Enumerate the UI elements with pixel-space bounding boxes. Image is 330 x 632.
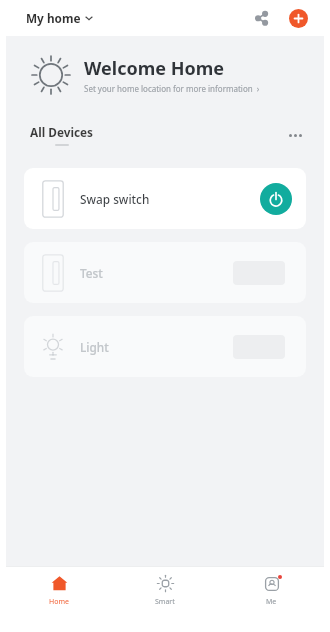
staticText: Home xyxy=(49,597,69,607)
button[interactable]: All Devices xyxy=(30,124,94,146)
button[interactable]: More options xyxy=(284,124,306,146)
staticText: Light xyxy=(80,339,109,355)
button[interactable]: Share xyxy=(249,5,275,31)
button[interactable]: Me xyxy=(218,567,324,632)
button[interactable]: Add device xyxy=(285,5,311,31)
button[interactable]: Light xyxy=(24,316,306,377)
button[interactable]: Power toggle xyxy=(260,183,292,215)
staticText: Me xyxy=(266,597,277,607)
staticText: Smart xyxy=(155,597,175,607)
button[interactable]: Swap switch xyxy=(24,168,306,229)
staticText: All Devices xyxy=(30,124,94,140)
staticText: Swap switch xyxy=(80,191,150,207)
button[interactable]: Smart xyxy=(112,567,218,632)
staticText: Set your home location for more informat… xyxy=(84,83,260,94)
button[interactable]: Test xyxy=(24,242,306,303)
staticText: My home xyxy=(26,10,81,26)
staticText: Welcome Home xyxy=(84,56,224,81)
staticText: Test xyxy=(80,265,103,281)
button[interactable]: Home xyxy=(6,567,112,632)
button[interactable]: My home xyxy=(24,5,95,31)
